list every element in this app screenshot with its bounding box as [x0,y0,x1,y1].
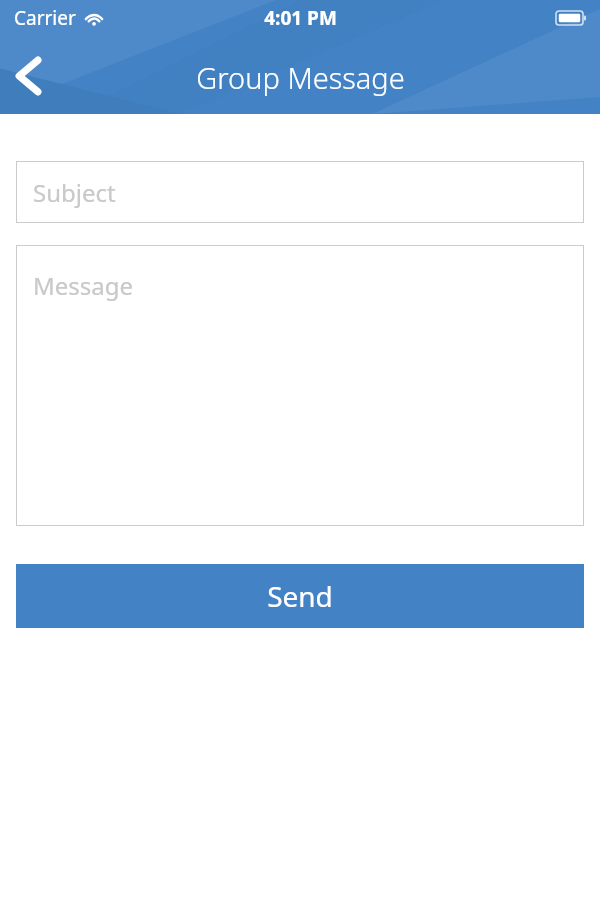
staticText: Subject [33,176,116,209]
staticText: 4:01 PM [264,5,337,31]
button[interactable]: Subject [16,161,584,223]
staticText: Carrier [14,5,76,31]
button[interactable]: Message [16,245,584,526]
staticText: Group Message [196,58,405,97]
staticText: Send [267,577,333,615]
staticText: Message [33,269,134,302]
button[interactable]: Back [0,46,56,106]
button[interactable]: Send [16,564,584,628]
